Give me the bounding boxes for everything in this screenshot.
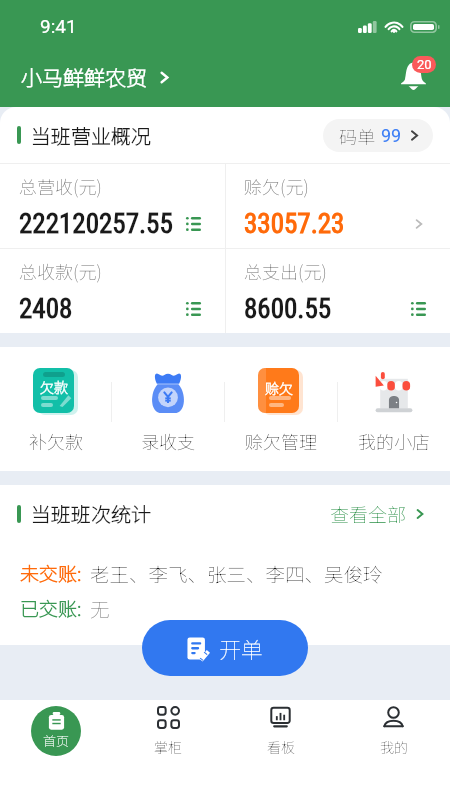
staticText: 33057.23: [244, 208, 345, 240]
staticText: 当班营业概况: [31, 121, 151, 150]
staticText: 我的小店: [358, 428, 430, 454]
staticText: 看板: [267, 737, 295, 757]
staticText: 小马鲜鲜农贸: [21, 62, 147, 92]
button[interactable]: 首页: [0, 700, 112, 762]
staticText: 222120257.55: [19, 208, 173, 240]
button[interactable]: 我的: [337, 700, 450, 762]
staticText: 无: [90, 594, 110, 622]
staticText: 20: [417, 57, 432, 72]
button[interactable]: 赊欠(元): [225, 164, 450, 248]
staticText: 未交账:: [20, 559, 82, 587]
staticText: 99: [381, 125, 402, 146]
button[interactable]: 码单: [323, 119, 433, 152]
button[interactable]: 查看全部: [330, 500, 427, 528]
button[interactable]: 欠款: [0, 347, 112, 471]
button[interactable]: 总收款(元): [0, 249, 225, 333]
staticText: 首页: [43, 731, 70, 750]
staticText: 总支出(元): [244, 258, 327, 284]
staticText: 总收款(元): [19, 258, 102, 284]
staticText: 查看全部: [330, 500, 407, 528]
button[interactable]: 看板: [224, 700, 337, 762]
button[interactable]: 总营收(元): [0, 164, 225, 248]
staticText: 补欠款: [29, 428, 83, 454]
staticText: 赊欠(元): [244, 173, 309, 199]
button[interactable]: 录收支: [112, 347, 224, 471]
staticText: 总营收(元): [19, 173, 102, 199]
button[interactable]: 开单: [142, 620, 308, 676]
staticText: 赊欠管理: [245, 428, 317, 454]
staticText: 老王、李飞、张三、李四、吴俊玲: [90, 559, 383, 587]
staticText: 掌柜: [154, 737, 182, 757]
staticText: 开单: [219, 632, 264, 664]
staticText: 录收支: [141, 428, 195, 454]
staticText: 欠款: [40, 377, 68, 397]
staticText: 8600.55: [244, 293, 332, 325]
staticText: 我的: [380, 737, 408, 757]
staticText: 赊欠: [265, 378, 293, 398]
staticText: 9:41: [40, 15, 77, 37]
button[interactable]: 赊欠: [224, 347, 337, 471]
button[interactable]: Notifications: [394, 54, 434, 100]
staticText: 当班班次统计: [31, 499, 151, 528]
staticText: 2408: [19, 293, 73, 325]
button[interactable]: 总支出(元): [225, 249, 450, 333]
staticText: 已交账:: [20, 594, 82, 622]
button[interactable]: 我的小店: [337, 347, 450, 471]
staticText: 码单: [339, 123, 375, 149]
button[interactable]: 掌柜: [112, 700, 224, 762]
